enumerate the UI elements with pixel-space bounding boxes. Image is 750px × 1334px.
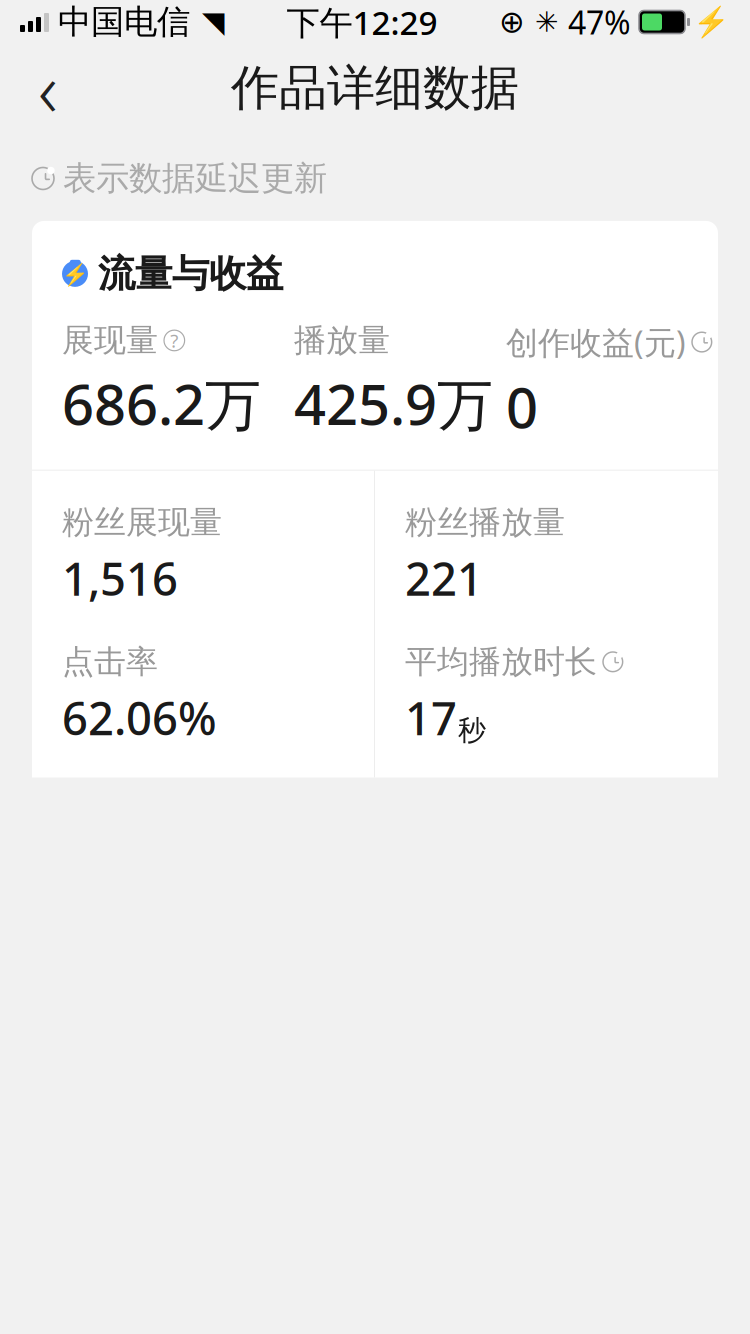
staticText: 展现量 bbox=[62, 321, 158, 360]
staticText: 47% bbox=[568, 1, 631, 43]
staticText: 中国电信 bbox=[58, 1, 190, 42]
staticText: 686.2万 bbox=[62, 366, 261, 440]
staticText: 创作收益(元) bbox=[506, 321, 686, 363]
staticText: 0 bbox=[506, 369, 538, 444]
staticText: 17 bbox=[405, 687, 457, 748]
staticText: 播放量 bbox=[294, 321, 390, 360]
staticText: ‹ bbox=[38, 38, 58, 138]
staticText: 点击率 bbox=[62, 642, 158, 681]
staticText: 221 bbox=[405, 548, 483, 608]
staticText: 62.06% bbox=[62, 687, 217, 748]
staticText: 粉丝展现量 bbox=[62, 503, 222, 542]
staticText: ⚡ bbox=[693, 5, 730, 39]
staticText: 秒 bbox=[458, 713, 486, 748]
staticText: ⊕ bbox=[499, 5, 525, 39]
staticText: 425.9万 bbox=[294, 366, 493, 440]
staticText: ? bbox=[170, 328, 178, 353]
staticText: ◥ bbox=[202, 5, 225, 39]
staticText: 下午12:29 bbox=[286, 0, 437, 44]
staticText: 平均播放时长 bbox=[405, 642, 597, 681]
button[interactable]: 返回 bbox=[8, 48, 88, 128]
staticText: ✳ bbox=[535, 6, 558, 38]
staticText: ⚡ bbox=[61, 262, 88, 287]
staticText: 粉丝播放量 bbox=[405, 503, 565, 542]
staticText: 作品详细数据 bbox=[231, 58, 519, 117]
staticText: 表示数据延迟更新 bbox=[63, 158, 327, 199]
staticText: 1,516 bbox=[62, 548, 178, 608]
staticText: 流量与收益 bbox=[98, 251, 283, 297]
